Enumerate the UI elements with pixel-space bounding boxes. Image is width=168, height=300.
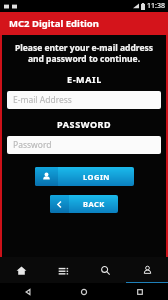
button[interactable]: Password: [7, 136, 161, 154]
staticText: PASSWORD: [57, 118, 112, 130]
button[interactable]: Recent apps: [112, 283, 168, 300]
button[interactable]: Home: [56, 283, 112, 300]
staticText: 11:38: [147, 1, 165, 11]
staticText: BACK: [83, 199, 105, 209]
staticText: E-mail Address: [13, 94, 72, 106]
button[interactable]: E-mail Address: [7, 91, 161, 109]
button[interactable]: Login: [35, 167, 134, 186]
button[interactable]: Home: [0, 257, 42, 283]
button[interactable]: Search: [84, 257, 126, 283]
button[interactable]: Back: [0, 283, 56, 300]
staticText: Please enter your e-mail address and pas…: [7, 42, 161, 64]
button[interactable]: Back: [50, 195, 118, 213]
staticText: LOGIN: [83, 172, 110, 182]
button[interactable]: Account: [126, 257, 168, 283]
button[interactable]: Catalog: [42, 257, 84, 283]
staticText: MC2 Digital Edition: [9, 17, 99, 30]
staticText: E-MAIL: [67, 73, 102, 85]
staticText: Password: [13, 139, 52, 151]
